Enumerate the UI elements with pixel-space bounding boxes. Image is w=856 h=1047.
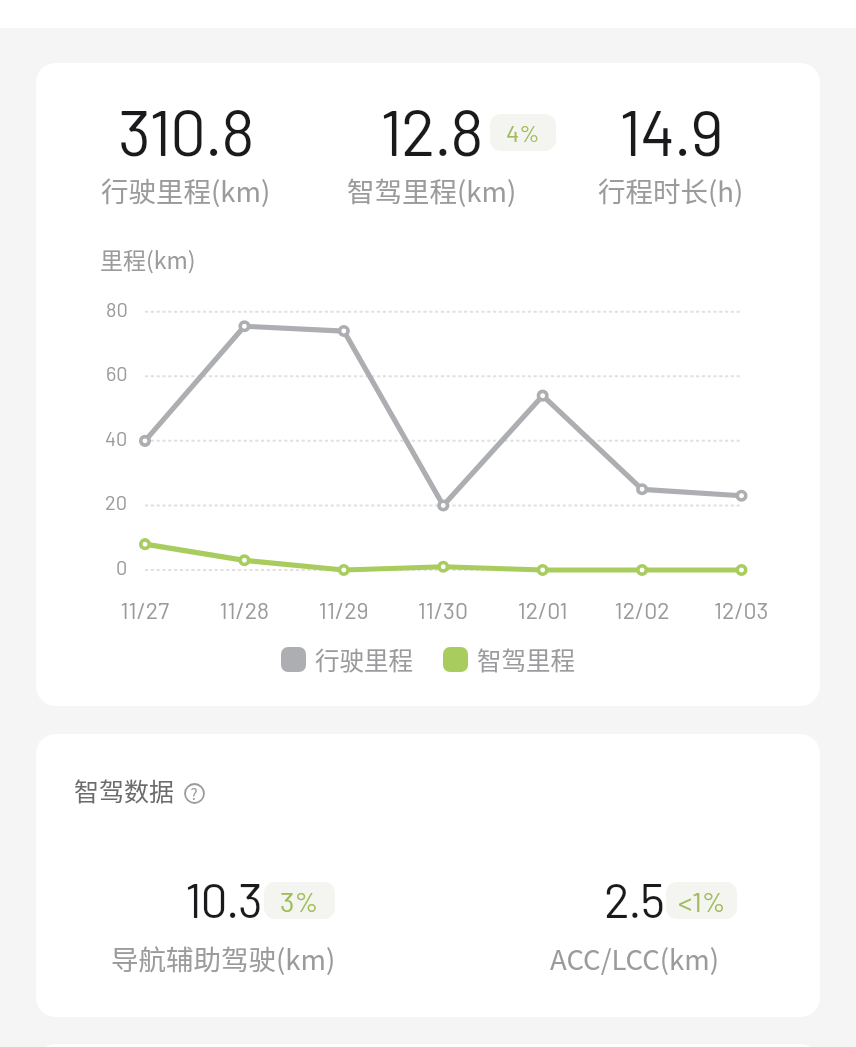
staticText: 智驾里程 bbox=[477, 642, 575, 677]
button[interactable]: 10.3 bbox=[36, 870, 419, 978]
staticText: 智驾里程(km) bbox=[347, 170, 517, 210]
button[interactable]: 智驾里程 bbox=[443, 642, 575, 677]
staticText: 行程时长(h) bbox=[598, 170, 744, 210]
staticText: 里程(km) bbox=[100, 242, 196, 275]
staticText: ACC/LCC(km) bbox=[550, 938, 719, 978]
staticText: 导航辅助驾驶(km) bbox=[111, 938, 336, 978]
button[interactable]: 12.8 bbox=[301, 92, 562, 210]
button[interactable]: 14.9 bbox=[540, 92, 801, 210]
staticText: 14.9 bbox=[619, 92, 723, 169]
staticText: <1% bbox=[678, 884, 726, 918]
staticText: 行驶里程 bbox=[315, 642, 413, 677]
button[interactable]: 310.8 bbox=[55, 92, 317, 210]
button[interactable]: 2.5 bbox=[438, 870, 820, 978]
staticText: 智驾数据 bbox=[74, 772, 175, 808]
staticText: 2.5 bbox=[604, 870, 664, 928]
button[interactable]: 行驶里程 bbox=[281, 642, 413, 677]
staticText: 310.8 bbox=[118, 92, 254, 169]
staticText: 10.3 bbox=[185, 870, 262, 928]
other: Help bbox=[184, 783, 205, 804]
button[interactable]: 智驾数据 bbox=[74, 772, 205, 808]
staticText: 12.8 bbox=[380, 92, 483, 169]
staticText: 3% bbox=[280, 884, 319, 918]
staticText: 行驶里程(km) bbox=[101, 170, 271, 210]
staticText: 4% bbox=[506, 118, 540, 147]
button[interactable]: 310.8 bbox=[36, 63, 820, 706]
button[interactable]: 智驾数据 bbox=[36, 734, 820, 1017]
